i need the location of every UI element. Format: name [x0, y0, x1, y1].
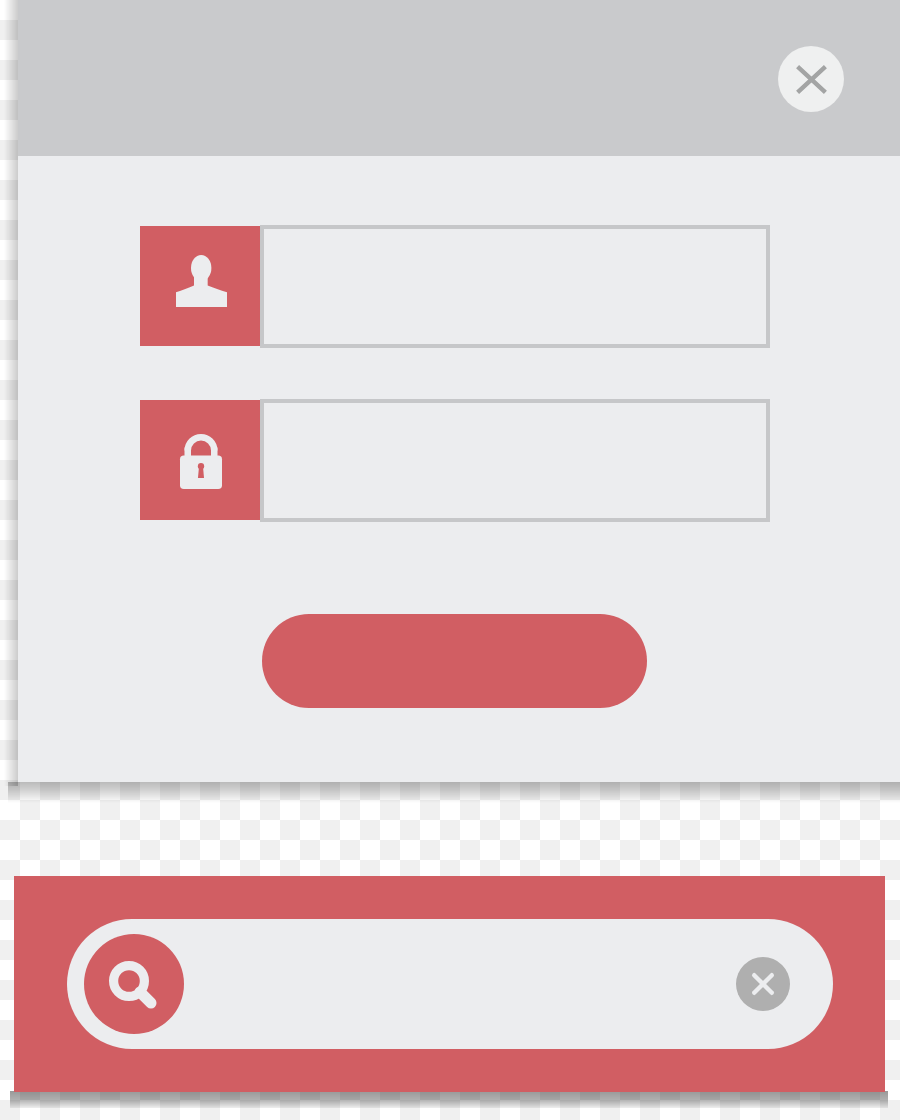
button[interactable]: Search [84, 934, 184, 1034]
button[interactable]: Clear search [736, 957, 790, 1011]
button[interactable]: Log in [262, 614, 647, 708]
button[interactable]: Search field [67, 919, 833, 1049]
button[interactable]: Password [140, 399, 770, 523]
button[interactable]: Username [140, 225, 770, 349]
button[interactable]: Close [778, 46, 844, 112]
